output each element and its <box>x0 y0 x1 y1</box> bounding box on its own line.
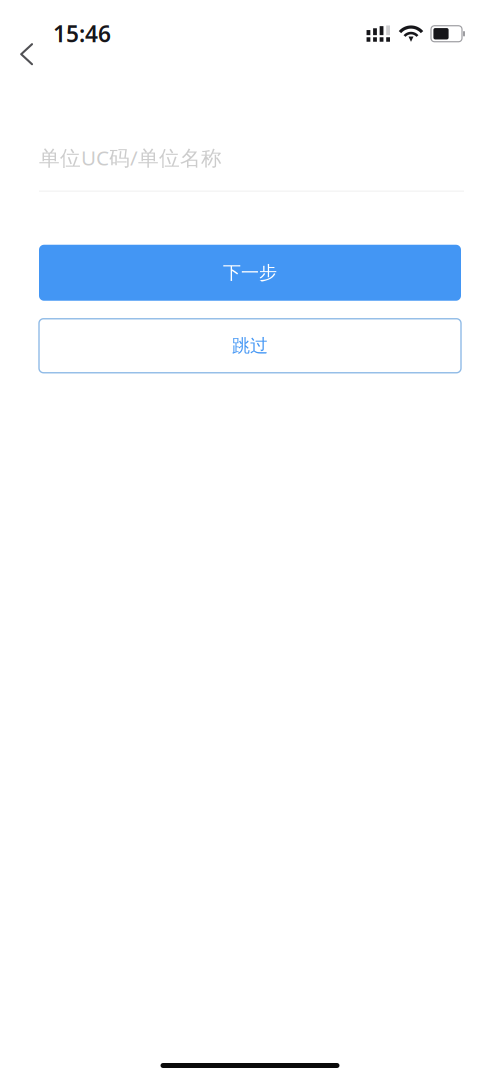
staticText: 单位UC码/单位名称 <box>39 143 222 171</box>
button[interactable]: 单位UC码/单位名称 <box>0 143 500 192</box>
button[interactable]: Back <box>0 42 50 75</box>
staticText: 下一步 <box>223 261 277 284</box>
button[interactable]: 跳过 <box>39 319 461 373</box>
staticText: 15:46 <box>53 18 111 49</box>
button[interactable]: 下一步 <box>39 245 461 301</box>
staticText: 跳过 <box>232 334 268 357</box>
